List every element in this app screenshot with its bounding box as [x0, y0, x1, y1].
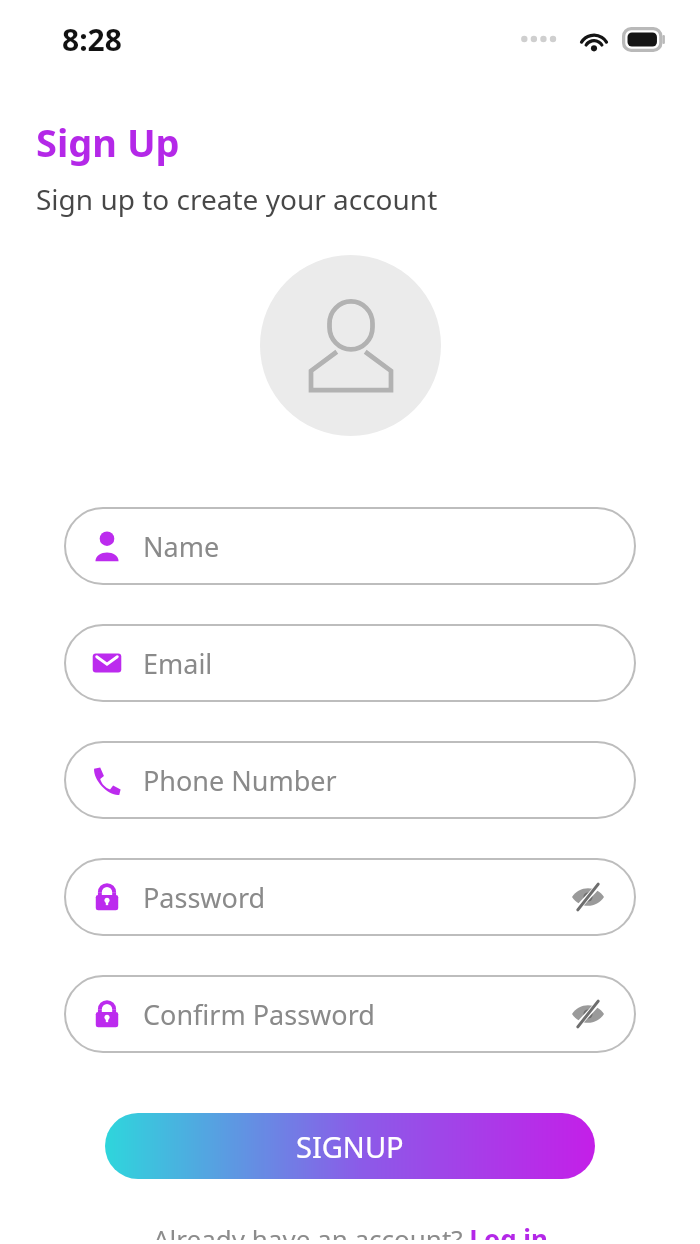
- staticText: Sign Up: [36, 116, 180, 168]
- staticText: Name: [143, 528, 220, 565]
- button[interactable]: Name: [64, 507, 636, 585]
- staticText: Phone Number: [143, 762, 337, 799]
- button[interactable]: Password: [64, 858, 636, 936]
- button[interactable]: Show password: [568, 994, 608, 1034]
- staticText: Sign up to create your account: [36, 180, 438, 218]
- button[interactable]: Already have an account? Log in: [145, 1217, 556, 1244]
- staticText: Already have an account? Log in: [153, 1221, 548, 1240]
- button[interactable]: Confirm Password: [64, 975, 636, 1053]
- button[interactable]: SIGNUP: [105, 1113, 595, 1179]
- button[interactable]: Profile photo: [260, 255, 441, 436]
- staticText: Email: [143, 645, 213, 682]
- staticText: Password: [143, 879, 266, 916]
- button[interactable]: Email: [64, 624, 636, 702]
- button[interactable]: Show password: [568, 877, 608, 917]
- staticText: Confirm Password: [143, 996, 375, 1033]
- button[interactable]: Phone Number: [64, 741, 636, 819]
- staticText: 8:28: [62, 19, 122, 60]
- staticText: SIGNUP: [296, 1127, 404, 1166]
